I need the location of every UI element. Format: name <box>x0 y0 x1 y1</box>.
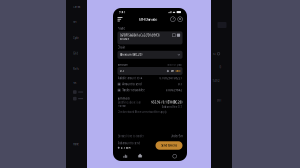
staticText: Everything above is an estimate <box>117 101 141 108</box>
staticText: Canvas <box>73 5 80 8</box>
staticText: 0.1 ETH <box>121 146 131 149</box>
staticText: 0x7BF15A6B41aCa2c7D1c09fC8B74F29 <box>120 34 159 41</box>
staticText: 9:41 <box>119 10 126 14</box>
staticText: $55.96 / 0.1 ETH (ERC-20) <box>151 101 182 104</box>
staticText: Send tokens <box>161 144 177 147</box>
staticText: Estimated time to transfer <box>117 134 144 138</box>
button[interactable]: Settings <box>178 17 182 22</box>
staticText: 92 <box>212 52 216 55</box>
staticText: Check network: Ethereum network fees app… <box>117 110 167 114</box>
staticText: Payee <box>117 27 126 30</box>
staticText: 0.00029842 <box>166 88 182 92</box>
staticText: Max <box>175 69 180 73</box>
button[interactable]: Max <box>175 69 180 73</box>
button[interactable]: 0x7BF15A6B41aCa2c7D1c09fC8B74F29 <box>117 31 182 44</box>
staticText: Transfer network fee <box>122 88 145 92</box>
staticText: ETH <box>170 69 174 73</box>
staticText: Grid <box>73 52 78 55</box>
button[interactable]: Menu <box>117 16 125 22</box>
staticText: 0.108234108221 <box>159 76 182 80</box>
staticText: Chain <box>117 46 126 49</box>
staticText: Cycle <box>73 36 79 40</box>
staticText: Refs <box>73 67 78 71</box>
staticText: Enter or paste <box>167 63 182 66</box>
button[interactable]: Profile <box>162 153 187 159</box>
staticText: 0.1 <box>178 82 182 86</box>
staticText: Summary <box>117 97 129 100</box>
staticText: 0.1 <box>120 69 125 73</box>
staticText: ETH Donate <box>139 16 157 22</box>
staticText: Ethereum (ERC-20) <box>120 53 142 56</box>
staticText: 0 <box>219 65 221 69</box>
staticText: Text <box>73 81 76 84</box>
staticText: ETH <box>73 20 77 24</box>
staticText: Total send fee 0.1 <box>162 105 182 109</box>
staticText: Under 5m <box>171 134 182 138</box>
button[interactable]: Markets <box>113 153 138 159</box>
staticText: ? <box>172 17 173 21</box>
staticText: Total amount to send <box>117 141 140 145</box>
staticText: Frame <box>73 142 79 146</box>
button[interactable]: Help <box>170 17 175 22</box>
staticText: Amount to send <box>122 82 142 86</box>
button[interactable]: Home <box>138 153 162 159</box>
staticText: 1492 <box>212 79 220 83</box>
button[interactable]: Ethereum (ERC-20) <box>117 51 182 59</box>
staticText: Amount <box>117 63 128 66</box>
staticText: 00T <box>216 99 221 102</box>
button[interactable]: Send tokens <box>155 141 182 150</box>
staticText: Available amount <box>117 76 136 80</box>
